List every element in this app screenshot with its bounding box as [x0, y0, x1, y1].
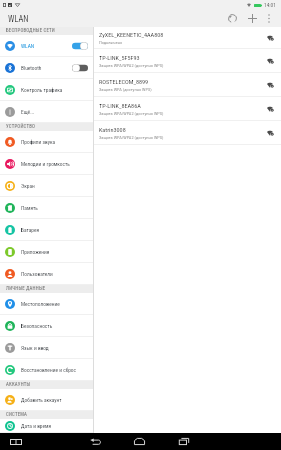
- button[interactable]: ROSTELECOM_8899: [94, 73, 281, 97]
- button[interactable]: Язык и ввод: [0, 337, 93, 359]
- staticText: Добавить аккаунт: [21, 397, 62, 403]
- staticText: Восстановление и сброс: [21, 367, 77, 373]
- staticText: WLAN: [21, 43, 35, 49]
- button[interactable]: Профили звука: [0, 131, 93, 153]
- staticText: УСТРОЙСТВО: [6, 124, 36, 130]
- staticText: ROSTELECOM_8899: [99, 78, 149, 85]
- staticText: Защита WPA/WPA2 (доступно WPS): [99, 111, 164, 116]
- button[interactable]: Back: [78, 433, 112, 450]
- staticText: Дата и время: [21, 423, 52, 429]
- button[interactable]: More options: [262, 10, 276, 27]
- staticText: Ещё...: [21, 109, 35, 115]
- button[interactable]: WLAN: [0, 35, 93, 57]
- staticText: Контроль трафика: [21, 87, 63, 93]
- staticText: Экран: [21, 183, 35, 189]
- staticText: Katrin3008: [99, 126, 126, 133]
- staticText: Профили звука: [21, 139, 56, 145]
- button[interactable]: Добавить аккаунт: [0, 389, 93, 411]
- staticText: Bluetooth: [21, 65, 42, 71]
- button[interactable]: Местоположение: [0, 293, 93, 315]
- staticText: БЕСПРОВОДНЫЕ СЕТИ: [6, 28, 56, 34]
- button[interactable]: Экран: [0, 175, 93, 197]
- button[interactable]: Мелодии и громкость: [0, 153, 93, 175]
- button[interactable]: ZyXEL_KEENETIC_4AA808: [94, 27, 281, 49]
- staticText: Память: [21, 205, 38, 211]
- staticText: Защита WPA/WPA2 (доступно WPS): [99, 135, 164, 140]
- button[interactable]: Батарея: [0, 219, 93, 241]
- staticText: Подключено: [99, 40, 123, 45]
- button[interactable]: Split screen: [3, 433, 28, 450]
- staticText: СИСТЕМА: [6, 412, 28, 418]
- staticText: Язык и ввод: [21, 345, 49, 351]
- button[interactable]: Home: [122, 433, 156, 450]
- staticText: Защита WPA (доступно WPS): [99, 87, 152, 92]
- button[interactable]: Контроль трафика: [0, 79, 93, 101]
- staticText: АККАУНТЫ: [6, 382, 31, 388]
- staticText: Местоположение: [21, 301, 60, 307]
- button[interactable]: Пользователи: [0, 263, 93, 285]
- button[interactable]: Add network: [242, 10, 262, 27]
- staticText: Батарея: [21, 227, 40, 233]
- button[interactable]: Ещё...: [0, 101, 93, 123]
- staticText: WLAN: [8, 14, 29, 24]
- staticText: Пользователи: [21, 271, 53, 277]
- button[interactable]: Refresh: [222, 10, 242, 27]
- button[interactable]: Bluetooth: [0, 57, 93, 79]
- staticText: Мелодии и громкость: [21, 161, 70, 167]
- staticText: TP-LINK_5F5F93: [99, 54, 140, 61]
- button[interactable]: Katrin3008: [94, 121, 281, 145]
- button[interactable]: Безопасность: [0, 315, 93, 337]
- staticText: ZyXEL_KEENETIC_4AA808: [99, 31, 164, 38]
- button[interactable]: Память: [0, 197, 93, 219]
- staticText: ЛИЧНЫЕ ДАННЫЕ: [6, 286, 46, 292]
- button[interactable]: Recent apps: [167, 433, 201, 450]
- button[interactable]: Дата и время: [0, 419, 93, 433]
- staticText: TP-LINK_8EA86A: [99, 102, 141, 109]
- staticText: Защита WPA/WPA2 (доступно WPS): [99, 63, 164, 68]
- button[interactable]: TP-LINK_5F5F93: [94, 49, 281, 73]
- button[interactable]: Восстановление и сброс: [0, 359, 93, 381]
- staticText: Безопасность: [21, 323, 53, 329]
- button[interactable]: Приложения: [0, 241, 93, 263]
- button[interactable]: TP-LINK_8EA86A: [94, 97, 281, 121]
- staticText: 14:01: [264, 2, 276, 8]
- staticText: Приложения: [21, 249, 50, 255]
